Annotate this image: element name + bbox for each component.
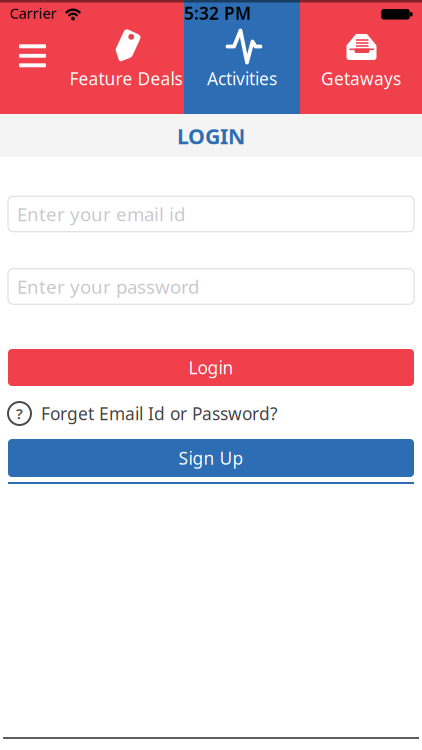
button[interactable]: Getaways — [300, 0, 422, 114]
staticText: ? — [16, 404, 23, 423]
button[interactable]: Login — [8, 349, 414, 386]
button[interactable]: Sign Up — [8, 439, 414, 477]
staticText: Feature Deals — [69, 67, 182, 90]
staticText: LOGIN — [177, 122, 245, 150]
button[interactable]: Activities — [184, 0, 300, 114]
staticText: Enter your email id — [17, 202, 185, 226]
staticText: Getaways — [321, 67, 401, 90]
button[interactable]: ? — [8, 398, 414, 428]
staticText: Carrier — [9, 3, 56, 23]
staticText: 5:32 PM — [184, 1, 251, 24]
staticText: Enter your password — [17, 274, 199, 299]
staticText: Login — [188, 356, 233, 379]
staticText: Activities — [207, 67, 277, 90]
staticText: Forget Email Id or Password? — [41, 402, 278, 425]
staticText: Sign Up — [178, 446, 243, 469]
button[interactable]: Menu — [8, 31, 56, 81]
button[interactable]: Feature Deals — [68, 0, 184, 114]
